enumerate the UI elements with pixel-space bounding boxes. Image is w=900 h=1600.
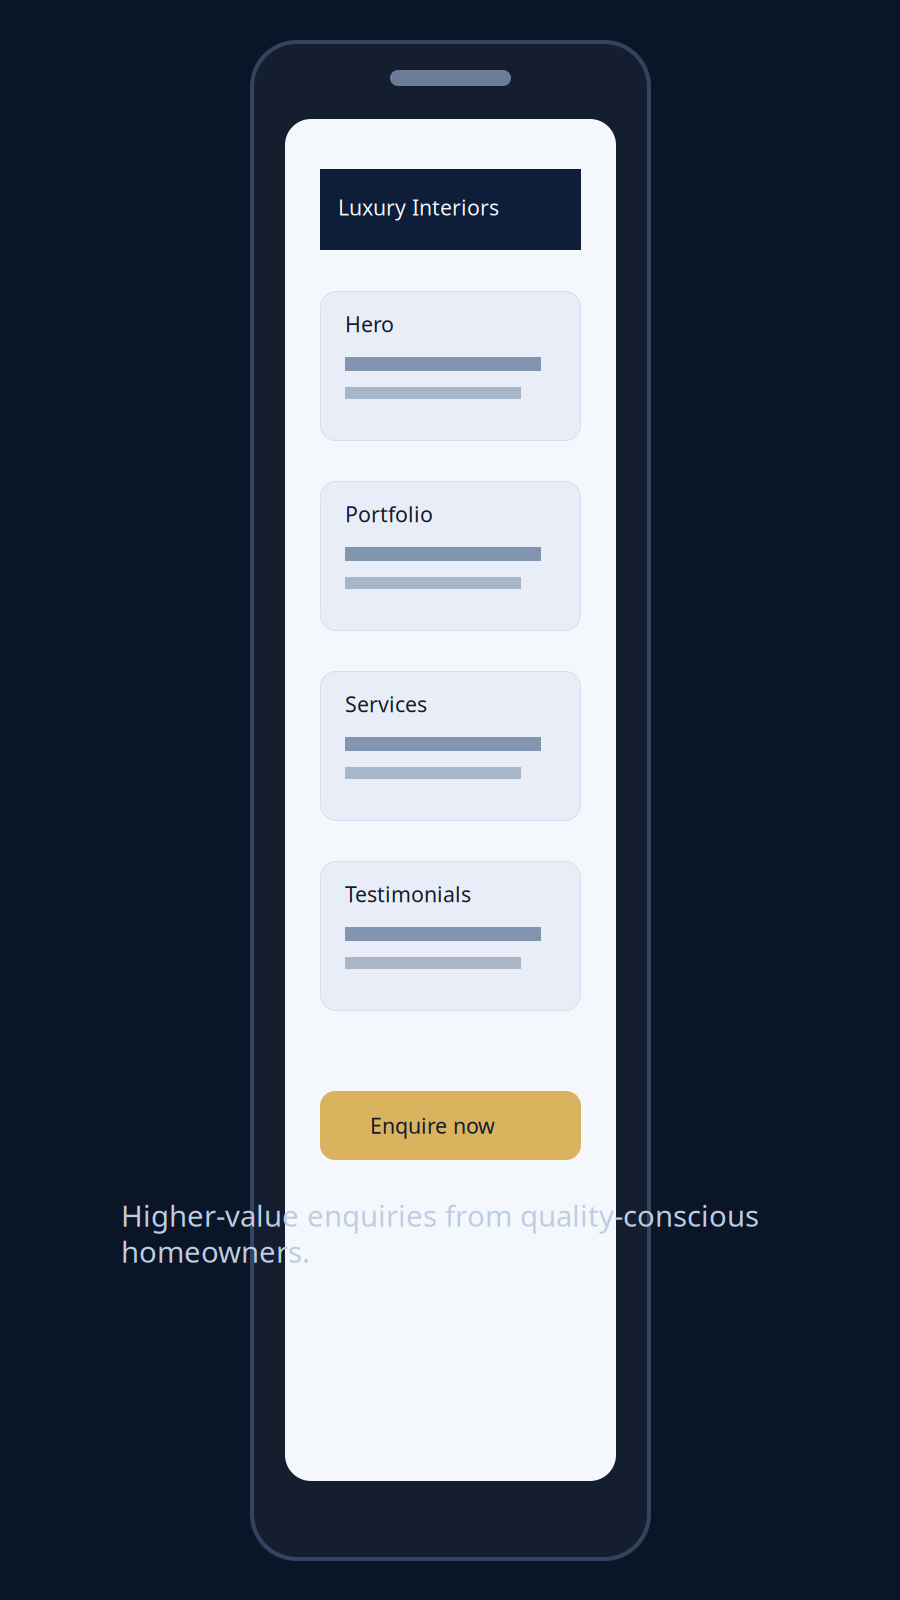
staticText: Testimonials: [345, 880, 471, 908]
staticText: Enquire now: [370, 1111, 495, 1140]
button[interactable]: Services: [320, 671, 581, 821]
button[interactable]: Enquire now: [320, 1091, 581, 1160]
staticText: homeowners.: [121, 1232, 310, 1271]
staticText: Services: [345, 690, 427, 718]
button[interactable]: Hero: [320, 291, 581, 441]
staticText: Hero: [345, 310, 394, 338]
button[interactable]: Portfolio: [320, 481, 581, 631]
staticText: Higher-value enquiries from quality-cons…: [121, 1196, 759, 1235]
staticText: Luxury Interiors: [338, 193, 499, 221]
staticText: Portfolio: [345, 500, 433, 528]
button[interactable]: Testimonials: [320, 861, 581, 1011]
